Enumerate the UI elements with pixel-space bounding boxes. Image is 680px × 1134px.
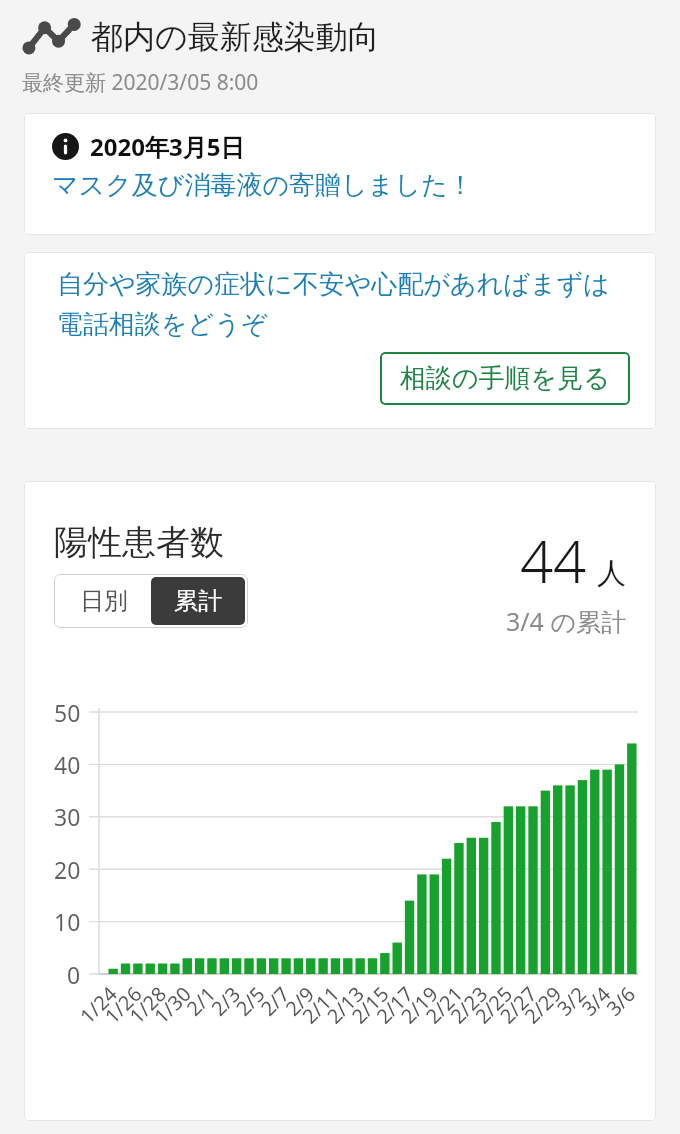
staticText: 相談の手順を見る <box>400 362 610 395</box>
staticText: 自分や家族の症状に不安や心配があればまずは電話相談をどうぞ <box>57 268 630 341</box>
other: Trend chart <box>22 16 80 58</box>
button[interactable]: 累計 <box>151 577 245 625</box>
staticText: 3/4 の累計 <box>506 604 626 638</box>
staticText: 累計 <box>174 586 222 616</box>
staticText: 都内の最新感染動向 <box>91 17 380 57</box>
button[interactable]: 相談の手順を見る <box>380 352 630 405</box>
staticText: 44 <box>520 521 587 600</box>
staticText: 最終更新 2020/3/05 8:00 <box>22 68 259 97</box>
staticText: 日別 <box>80 586 128 616</box>
button[interactable]: 2020年3月5日 <box>24 113 656 235</box>
staticText: マスク及び消毒液の寄贈しました！ <box>52 169 474 202</box>
staticText: 陽性患者数 <box>54 521 224 564</box>
button[interactable]: 日別 <box>57 577 151 625</box>
staticText: 人 <box>597 555 626 592</box>
staticText: 2020年3月5日 <box>90 130 245 163</box>
